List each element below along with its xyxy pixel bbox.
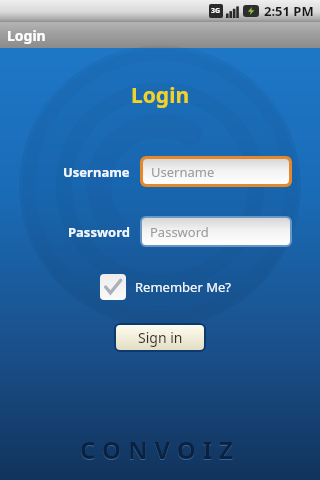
staticText: Username: [151, 163, 215, 181]
staticText: Password: [150, 223, 209, 241]
button[interactable]: Remember Me checkbox: [100, 274, 237, 300]
other: Remember Me checkbox: [100, 274, 126, 300]
staticText: Password: [68, 223, 130, 241]
button[interactable]: Sign in: [116, 325, 204, 350]
staticText: Sign in: [138, 328, 183, 347]
staticText: Login: [131, 81, 190, 110]
staticText: CONVOIZ: [80, 434, 240, 467]
staticText: 3G: [211, 6, 221, 16]
staticText: 2:51 PM: [264, 2, 314, 20]
button[interactable]: Password: [142, 218, 290, 245]
button[interactable]: Username: [143, 159, 289, 184]
staticText: Username: [63, 163, 130, 181]
staticText: Login: [7, 26, 46, 45]
staticText: Remember Me?: [135, 278, 231, 296]
staticText: CONVOIZ: [80, 433, 240, 466]
